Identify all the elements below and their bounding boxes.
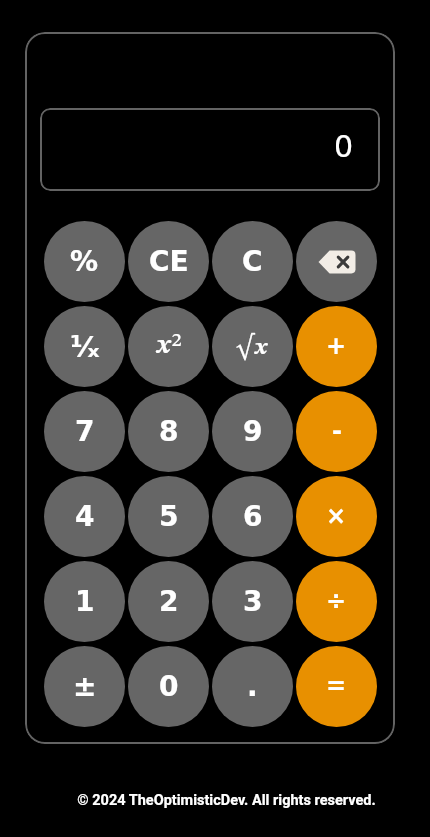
button[interactable]: Backspace — [296, 221, 377, 302]
button[interactable]: 1 — [44, 561, 125, 642]
staticText: 𝒙² — [156, 333, 182, 359]
button[interactable]: 3 — [212, 561, 293, 642]
staticText: 2 — [159, 585, 179, 618]
staticText: ÷ — [326, 587, 347, 615]
staticText: + — [326, 332, 347, 360]
button[interactable]: ± — [44, 646, 125, 727]
button[interactable]: ¹⁄ₓ — [44, 306, 125, 387]
button[interactable]: CE — [128, 221, 209, 302]
button[interactable]: . — [212, 646, 293, 727]
staticText: 0 — [159, 670, 179, 703]
button[interactable]: % — [44, 221, 125, 302]
staticText: ¹⁄ₓ — [70, 330, 100, 364]
button[interactable]: 𝒙² — [128, 306, 209, 387]
staticText: √𝒙 — [236, 336, 269, 359]
button[interactable]: 2 — [128, 561, 209, 642]
button[interactable]: 6 — [212, 476, 293, 557]
button[interactable]: 0 — [128, 646, 209, 727]
staticText: 3 — [243, 585, 263, 618]
button[interactable]: C — [212, 221, 293, 302]
button[interactable]: 8 — [128, 391, 209, 472]
staticText: CE — [149, 245, 189, 278]
other: Backspace — [315, 240, 359, 284]
staticText: % — [70, 245, 99, 278]
staticText: 4 — [75, 500, 95, 533]
staticText: 8 — [159, 415, 179, 448]
staticText: - — [332, 417, 342, 445]
button[interactable]: 5 — [128, 476, 209, 557]
staticText: × — [326, 502, 347, 530]
button[interactable]: 4 — [44, 476, 125, 557]
staticText: = — [326, 672, 347, 700]
staticText: 0 — [334, 129, 354, 164]
button[interactable]: + — [296, 306, 377, 387]
staticText: 9 — [243, 415, 263, 448]
staticText: © 2024 TheOptimisticDev. All rights rese… — [77, 792, 376, 809]
button[interactable]: 9 — [212, 391, 293, 472]
staticText: C — [242, 245, 263, 278]
button[interactable]: ÷ — [296, 561, 377, 642]
staticText: . — [247, 670, 258, 703]
staticText: 7 — [75, 415, 95, 448]
button[interactable]: = — [296, 646, 377, 727]
staticText: ± — [73, 670, 97, 703]
button[interactable]: × — [296, 476, 377, 557]
staticText: 5 — [159, 500, 179, 533]
button[interactable]: 7 — [44, 391, 125, 472]
staticText: 1 — [75, 585, 95, 618]
button[interactable]: - — [296, 391, 377, 472]
button[interactable]: √𝒙 — [212, 306, 293, 387]
staticText: 6 — [243, 500, 263, 533]
